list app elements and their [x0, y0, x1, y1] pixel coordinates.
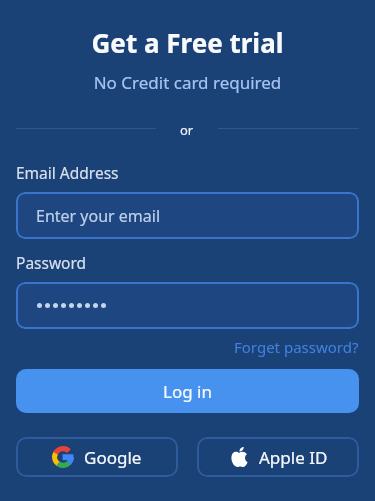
staticText: Log in: [163, 380, 212, 403]
button[interactable]: Log in: [16, 369, 359, 413]
staticText: Email Address: [16, 162, 119, 183]
staticText: Google: [84, 446, 142, 469]
staticText: Get a Free trial: [16, 25, 359, 60]
button[interactable]: [16, 282, 359, 329]
staticText: No Credit card required: [16, 71, 359, 94]
button[interactable]: Enter your email: [16, 192, 359, 239]
staticText: or: [180, 121, 194, 135]
button[interactable]: Google: [16, 437, 178, 477]
button[interactable]: Forget password?: [234, 337, 359, 357]
staticText: Password: [16, 252, 87, 273]
button[interactable]: Apple ID: [197, 437, 359, 477]
staticText: Apple ID: [259, 446, 328, 469]
staticText: Enter your email: [36, 205, 161, 227]
